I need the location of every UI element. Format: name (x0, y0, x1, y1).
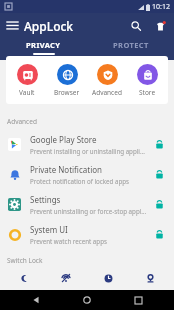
staticText: AppLock (24, 18, 74, 34)
button[interactable]: Recent apps (123, 290, 153, 310)
button[interactable]: Private Notification (0, 159, 174, 189)
staticText: Google Play Store (30, 134, 97, 145)
button[interactable]: Location lock (132, 268, 168, 288)
button[interactable]: Themes (148, 14, 172, 38)
staticText: Prevent watch recent apps (30, 237, 107, 245)
button[interactable]: Advanced (88, 63, 126, 98)
button[interactable]: Browser (48, 63, 86, 98)
button[interactable]: Home (72, 290, 102, 310)
button[interactable]: Toggle lock for Settings (151, 196, 167, 212)
staticText: Advanced (92, 88, 122, 97)
staticText: Advanced (7, 117, 37, 126)
button[interactable]: Wi-Fi off (48, 268, 84, 288)
button[interactable]: Night mode (6, 268, 42, 288)
button[interactable]: Search (124, 14, 148, 38)
button[interactable]: Google Play Store (0, 129, 174, 159)
button[interactable]: Back (21, 290, 51, 310)
staticText: PROTECT (113, 40, 149, 50)
button[interactable]: Toggle lock for Google Play Store (151, 136, 167, 152)
staticText: Switch Lock (7, 256, 43, 265)
button[interactable]: Time lock (90, 268, 126, 288)
staticText: Prevent uninstalling or force-stop appli… (30, 207, 147, 215)
button[interactable]: Store (128, 63, 166, 98)
button[interactable]: Vault (8, 63, 46, 98)
staticText: Private Notification (30, 164, 102, 175)
staticText: Prevent installing or uninstalling appli… (30, 147, 147, 155)
button[interactable]: System UI (0, 219, 174, 249)
button[interactable]: Settings (0, 189, 174, 219)
button[interactable]: PRIVACY (0, 38, 87, 56)
button[interactable]: Open navigation menu (0, 14, 24, 38)
staticText: Settings (30, 194, 61, 205)
staticText: Protect notification of locked apps (30, 177, 130, 185)
button[interactable]: Toggle lock for Private Notification (151, 166, 167, 182)
staticText: Store (139, 88, 156, 97)
button[interactable]: PROTECT (87, 38, 174, 56)
staticText: Vault (19, 88, 35, 97)
button[interactable]: Toggle lock for System UI (151, 226, 167, 242)
staticText: PRIVACY (26, 40, 61, 50)
staticText: System UI (30, 224, 68, 235)
staticText: Browser (54, 88, 80, 97)
staticText: 10:12 (152, 2, 170, 12)
